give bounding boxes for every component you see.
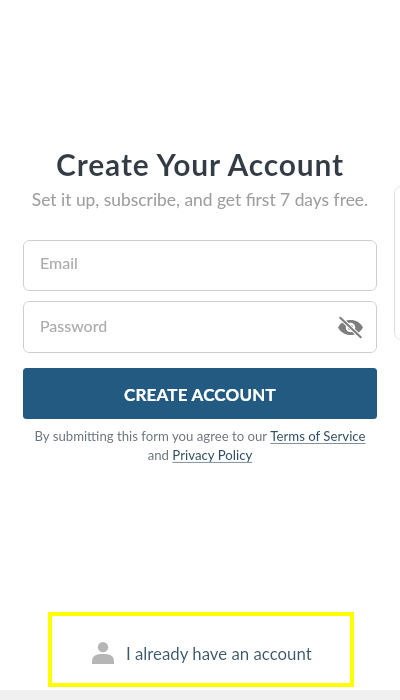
button[interactable]: I already have an account — [48, 612, 354, 687]
staticText: Password — [40, 316, 108, 335]
button[interactable]: Show password — [335, 312, 365, 342]
button[interactable]: Email — [23, 240, 377, 291]
staticText: I already have an account — [126, 643, 312, 663]
staticText: Email — [40, 253, 78, 272]
staticText: Create Your Account — [0, 146, 400, 182]
staticText: Set it up, subscribe, and get first 7 da… — [0, 189, 400, 210]
staticText: By submitting this form you agree to our… — [28, 428, 372, 462]
staticText: CREATE ACCOUNT — [124, 384, 276, 404]
button[interactable]: CREATE ACCOUNT — [23, 368, 377, 419]
button[interactable]: Password — [23, 301, 377, 353]
